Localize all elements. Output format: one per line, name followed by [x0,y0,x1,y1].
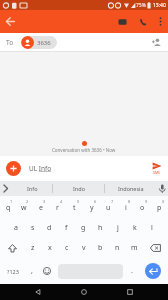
button[interactable]: x [41,238,58,258]
staticText: 2 [26,199,29,204]
button[interactable] [0,238,25,258]
staticText: ?123 [7,268,19,275]
button[interactable] [159,17,162,26]
button[interactable]: m [126,238,143,258]
button[interactable] [127,289,133,295]
staticText: a [14,223,18,233]
button[interactable]: n [109,238,126,258]
staticText: 1 [10,199,13,204]
staticText: Info [27,185,38,192]
button[interactable]: v [75,238,92,258]
button[interactable]: u [100,198,117,218]
button[interactable] [39,258,55,284]
button[interactable]: e [32,198,49,218]
staticText: , [31,266,33,276]
button[interactable]: 3636 [21,36,57,49]
staticText: h [98,223,103,233]
button[interactable]: q [0,198,16,218]
staticText: 0 [162,199,165,204]
button[interactable]: y [83,198,100,218]
staticText: d [47,223,52,233]
staticText: UL Info [29,164,52,173]
staticText: To [6,38,14,47]
button[interactable]: t [66,198,83,218]
staticText: x [48,243,52,253]
button[interactable] [139,18,147,26]
button[interactable] [152,38,162,47]
staticText: w [21,203,27,213]
staticText: 7 [111,199,114,204]
button[interactable]: g [75,218,92,238]
staticText: 4 [60,199,63,204]
staticText: Conversation with 3636 • Now [52,147,116,153]
button[interactable]: k [126,218,143,238]
staticText: s [31,223,35,233]
staticText: 3 [43,199,46,204]
staticText: f [65,223,68,233]
button[interactable]: Indo [53,181,104,196]
button[interactable]: ?123 [0,258,25,284]
button[interactable] [6,161,21,176]
staticText: 75% [136,2,146,9]
button[interactable]: p [151,198,168,218]
button[interactable]: z [25,238,41,258]
button[interactable] [35,289,41,295]
button[interactable]: Indonesia [105,181,156,196]
staticText: r [56,203,59,213]
button[interactable]: f [58,218,75,238]
staticText: n [115,243,120,253]
staticText: e [39,203,43,213]
staticText: p [157,203,162,213]
button[interactable]: h [92,218,109,238]
button[interactable] [156,184,168,194]
staticText: c [65,243,69,253]
button[interactable]: i [117,198,134,218]
staticText: i [125,203,127,213]
button[interactable]: Info [12,181,52,196]
staticText: q [6,203,11,213]
button[interactable]: , [25,258,39,284]
staticText: j [117,223,119,233]
staticText: 3636 [37,39,51,47]
button[interactable]: a [8,218,24,238]
button[interactable] [143,238,168,258]
staticText: SMS [153,170,161,175]
staticText: 6 [94,199,97,204]
staticText: z [31,243,35,253]
staticText: y [90,203,94,213]
button[interactable] [0,184,12,193]
button[interactable]: b [92,238,109,258]
staticText: b [98,243,103,253]
staticText: v [82,243,86,253]
button[interactable]: o [134,198,151,218]
staticText: o [140,203,145,213]
staticText: 8 [128,199,131,204]
staticText: k [133,223,137,233]
button[interactable]: d [41,218,58,238]
button[interactable] [6,17,15,26]
button[interactable]: SMS [152,162,162,175]
button[interactable]: w [16,198,32,218]
button[interactable]: l [143,218,160,238]
button[interactable]: r [49,198,66,218]
staticText: m [131,243,138,253]
staticText: 9 [145,199,148,204]
button[interactable] [118,18,127,26]
staticText: t [73,203,76,213]
staticText: 13:40 [153,2,166,9]
staticText: Indonesia [118,185,144,192]
staticText: g [81,223,86,233]
button[interactable]: c [58,238,75,258]
button[interactable]: j [109,218,126,238]
staticText: . [131,266,133,276]
staticText: Indo [73,185,85,192]
button[interactable] [81,289,87,295]
button[interactable]: s [24,218,41,238]
staticText: 5 [77,199,80,204]
button[interactable]: . [126,258,137,284]
button[interactable] [137,258,168,284]
staticText: u [106,203,111,213]
staticText: l [151,223,153,233]
